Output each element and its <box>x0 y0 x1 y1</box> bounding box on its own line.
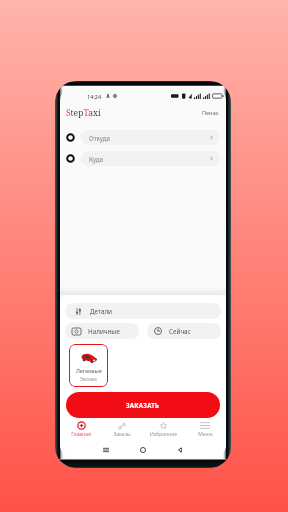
button[interactable]: Главная <box>60 418 101 440</box>
button[interactable]: Меню <box>184 418 226 440</box>
button[interactable]: Back <box>174 444 186 456</box>
staticText: Легковые <box>76 367 102 374</box>
staticText: Наличные <box>88 327 120 336</box>
button[interactable]: ЗАКАЗАТЬ <box>66 392 220 418</box>
button[interactable]: Легковые <box>69 344 108 387</box>
staticText: Избранное <box>150 431 177 438</box>
staticText: Заказы <box>113 431 131 438</box>
staticText: Куда <box>89 155 103 163</box>
staticText: 14:24 <box>87 93 102 100</box>
staticText: Сейчас <box>169 327 191 336</box>
button[interactable]: Наличные <box>65 323 139 339</box>
button[interactable]: Откуда <box>60 130 226 145</box>
staticText: Меню <box>198 431 213 438</box>
button[interactable]: Детали <box>65 303 221 319</box>
staticText: Откуда <box>89 134 110 142</box>
button[interactable]: Куда <box>60 151 226 166</box>
staticText: ЗАКАЗАТЬ <box>126 401 160 409</box>
button[interactable]: Home <box>137 444 149 456</box>
button[interactable]: Заказы <box>101 418 142 440</box>
staticText: Эконом <box>80 376 97 382</box>
button[interactable]: Пенза <box>202 109 219 116</box>
button[interactable]: Избранное <box>142 418 184 440</box>
staticText: StepTaxi <box>66 107 101 119</box>
staticText: Детали <box>90 307 113 316</box>
button[interactable]: Recents <box>100 444 112 456</box>
button[interactable]: Сейчас <box>147 323 221 339</box>
staticText: Главная <box>71 431 91 438</box>
